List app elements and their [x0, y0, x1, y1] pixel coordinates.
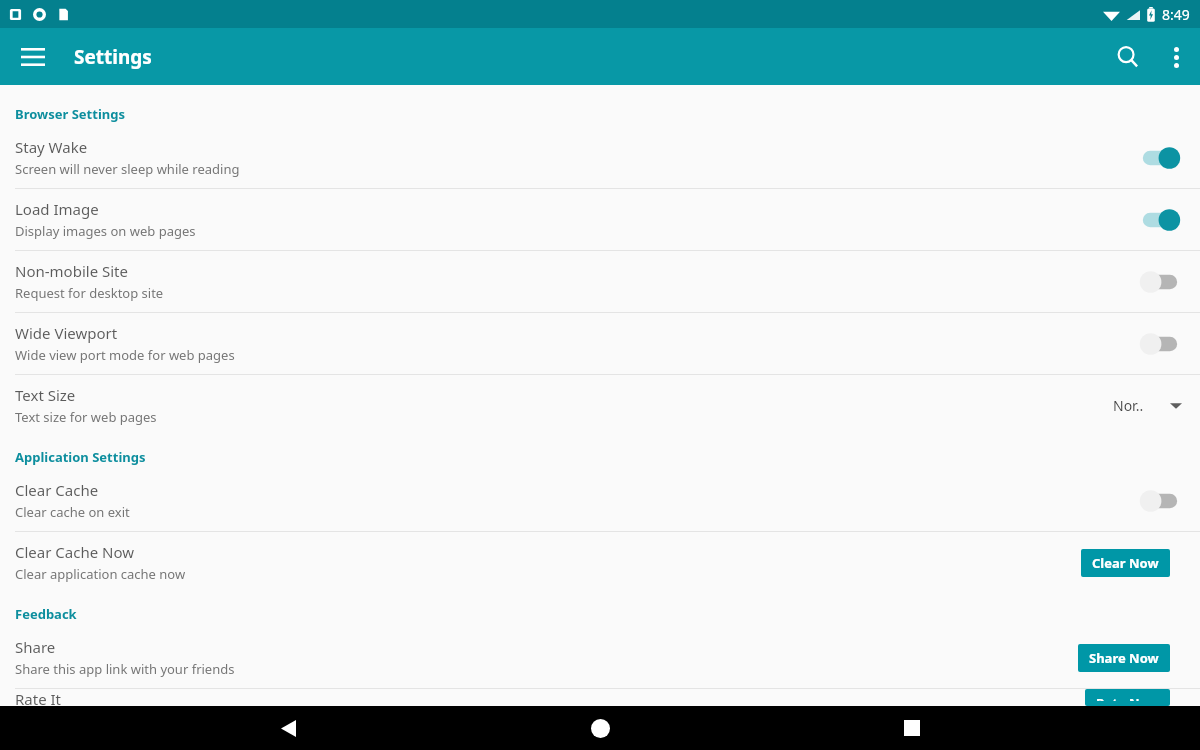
staticText: Share Now [1089, 649, 1159, 667]
staticText: Text Size [15, 385, 76, 405]
button[interactable]: Toggle off [1134, 326, 1186, 362]
staticText: Clear cache on exit [15, 503, 130, 521]
staticText: Display images on web pages [15, 222, 196, 240]
button[interactable]: Search [1104, 33, 1152, 81]
button[interactable]: Clear Cache [0, 470, 1200, 531]
staticText: Text size for web pages [15, 408, 157, 426]
button[interactable]: Share [0, 627, 1200, 688]
staticText: Settings [74, 44, 152, 70]
staticText: Feedback [15, 605, 77, 623]
button[interactable]: Share Now [1078, 644, 1170, 672]
staticText: Browser Settings [15, 105, 125, 123]
button[interactable]: More options [1152, 33, 1200, 81]
staticText: Non-mobile Site [15, 261, 128, 281]
staticText: 8:49 [1162, 5, 1190, 24]
button[interactable]: Clear Now [1081, 549, 1170, 577]
button[interactable]: Load Image [0, 189, 1200, 250]
staticText: Clear Cache Now [15, 542, 135, 562]
button[interactable]: Toggle on [1134, 202, 1186, 238]
button[interactable]: Rate Now [1085, 689, 1170, 706]
staticText: Rate It [15, 689, 62, 706]
staticText: Clear Now [1092, 554, 1159, 572]
staticText: Wide Viewport [15, 323, 118, 343]
button[interactable]: Open navigation menu [14, 38, 52, 76]
staticText: Request for desktop site [15, 284, 164, 302]
staticText: Share this app link with your friends [15, 660, 235, 678]
button[interactable]: Non-mobile Site [0, 251, 1200, 312]
button[interactable]: Rate It [0, 689, 1200, 706]
staticText: Nor.. [1113, 396, 1144, 415]
staticText: Share [15, 637, 56, 657]
staticText: Rate Now [1096, 694, 1159, 701]
button[interactable]: Stay Wake [0, 127, 1200, 188]
button[interactable]: Home [576, 706, 624, 750]
button[interactable]: Back [264, 706, 312, 750]
button[interactable]: Clear Cache Now [0, 532, 1200, 593]
button[interactable]: Wide Viewport [0, 313, 1200, 374]
staticText: Clear application cache now [15, 565, 186, 583]
staticText: Load Image [15, 199, 99, 219]
button[interactable]: Recent apps [888, 706, 936, 750]
staticText: Wide view port mode for web pages [15, 346, 235, 364]
button[interactable]: Toggle off [1134, 264, 1186, 300]
staticText: Screen will never sleep while reading [15, 160, 240, 178]
button[interactable]: Text Size [0, 375, 1200, 436]
button[interactable]: Toggle off [1134, 483, 1186, 519]
button[interactable]: Nor.. [1105, 396, 1186, 415]
staticText: Application Settings [15, 448, 146, 466]
staticText: Stay Wake [15, 137, 88, 157]
staticText: Clear Cache [15, 480, 99, 500]
button[interactable]: Toggle on [1134, 140, 1186, 176]
